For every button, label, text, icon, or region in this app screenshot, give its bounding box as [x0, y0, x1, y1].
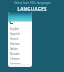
staticText: Select from 100+ languages [14, 1, 51, 5]
button[interactable]: Japanese [10, 61, 32, 66]
button[interactable]: Italian [10, 46, 32, 51]
staticText: Chinese [10, 57, 20, 61]
button[interactable]: German [10, 41, 32, 46]
staticText: LANGUAGES [17, 6, 47, 12]
staticText: German [10, 42, 20, 46]
staticText: English [10, 27, 19, 31]
staticText: Japanese [10, 62, 21, 66]
staticText: Spanish [10, 32, 20, 36]
button[interactable]: Spanish [10, 31, 32, 36]
staticText: Italian [10, 47, 18, 51]
button[interactable]: Russian [10, 51, 32, 56]
button[interactable]: English [10, 26, 32, 31]
staticText: Russian [10, 52, 20, 56]
staticText: French [10, 37, 19, 41]
button[interactable]: French [10, 36, 32, 41]
button[interactable]: Chinese [10, 56, 32, 61]
